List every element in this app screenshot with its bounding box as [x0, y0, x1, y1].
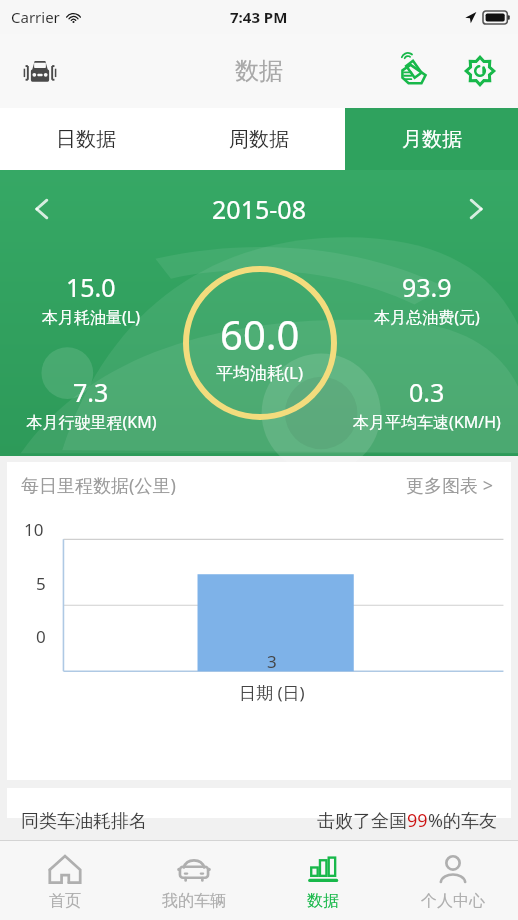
- button[interactable]: My car: [14, 45, 66, 97]
- staticText: 日期 (日): [239, 681, 305, 704]
- staticText: 平均油耗(L): [216, 361, 304, 384]
- button[interactable]: Next month: [452, 185, 500, 233]
- staticText: 10: [24, 518, 44, 541]
- staticText: 我的车辆: [162, 891, 226, 911]
- staticText: 周数据: [229, 127, 289, 152]
- button[interactable]: 同类车油耗排名: [7, 788, 511, 818]
- staticText: 本月行驶里程(KM): [26, 411, 157, 433]
- staticText: 同类车油耗排名: [21, 810, 147, 833]
- button[interactable]: 月数据: [345, 108, 518, 170]
- staticText: 5: [36, 572, 46, 595]
- staticText: 15.0: [66, 270, 116, 304]
- staticText: 日数据: [56, 127, 116, 152]
- staticText: 0: [36, 625, 46, 648]
- staticText: 本月耗油量(L): [42, 306, 140, 328]
- staticText: 更多图表 >: [406, 473, 493, 498]
- staticText: 击败了全国: [317, 810, 407, 833]
- staticText: %的车友: [428, 808, 497, 833]
- button[interactable]: 周数据: [172, 108, 345, 170]
- button[interactable]: 首页: [0, 841, 129, 920]
- staticText: 7.3: [73, 375, 109, 409]
- staticText: 99: [407, 808, 428, 833]
- staticText: 93.9: [402, 270, 452, 304]
- button[interactable]: Previous month: [18, 185, 66, 233]
- button[interactable]: 更多图表 >: [402, 469, 497, 502]
- button[interactable]: 个人中心: [388, 841, 518, 920]
- staticText: 每日里程数据(公里): [21, 473, 176, 498]
- staticText: 本月总油费(元): [374, 306, 480, 328]
- staticText: 数据: [307, 891, 339, 911]
- button[interactable]: 我的车辆: [129, 841, 258, 920]
- staticText: 个人中心: [421, 891, 485, 911]
- staticText: 本月平均车速(KM/H): [353, 411, 501, 433]
- staticText: 7:43 PM: [230, 7, 288, 27]
- staticText: 首页: [49, 891, 81, 911]
- staticText: 2015-08: [66, 192, 452, 226]
- staticText: 3: [267, 650, 277, 673]
- staticText: 月数据: [402, 127, 462, 152]
- button[interactable]: Settings: [456, 47, 504, 95]
- button[interactable]: 数据: [258, 841, 388, 920]
- button[interactable]: Remote control: [388, 45, 440, 97]
- staticText: 数据: [235, 56, 283, 86]
- staticText: 0.3: [409, 375, 445, 409]
- staticText: 60.0: [220, 307, 300, 361]
- staticText: Carrier: [11, 7, 60, 27]
- button[interactable]: 日数据: [0, 108, 172, 170]
